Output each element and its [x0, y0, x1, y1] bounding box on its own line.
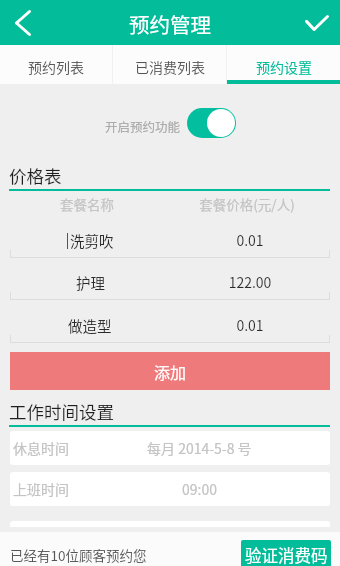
staticText: 09:00 [182, 479, 217, 499]
button[interactable]: 添加 [10, 352, 330, 390]
staticText: 套餐价格(元/人) [167, 194, 327, 214]
button[interactable]: 已消费列表 [113, 45, 226, 84]
staticText: 预约设置 [256, 57, 312, 77]
staticText: 添加 [154, 360, 187, 383]
staticText: 洗剪吹 [70, 230, 114, 251]
staticText: 预约列表 [28, 57, 84, 77]
staticText: 护理 [76, 272, 105, 293]
staticText: 每月 2014-5-8 号 [147, 438, 252, 458]
button[interactable]: 洗剪吹 [10, 222, 330, 258]
button[interactable]: 预约列表 [0, 45, 112, 84]
staticText: 验证消费码 [245, 543, 328, 566]
staticText: 套餐名称 [7, 194, 167, 214]
button[interactable] [187, 108, 236, 138]
staticText: 做造型 [68, 315, 112, 336]
button[interactable]: 验证消费码 [241, 540, 331, 566]
staticText: 工作时间设置 [9, 399, 114, 424]
staticText: 预约管理 [129, 9, 211, 39]
staticText: 开启预约功能 [105, 117, 181, 135]
staticText: 已经有10位顾客预约您 [10, 545, 147, 565]
button[interactable]: 预约设置 [227, 45, 340, 84]
staticText: 122.00 [170, 272, 330, 292]
button[interactable]: Confirm [294, 0, 340, 45]
staticText: 上班时间 [13, 479, 69, 499]
button[interactable]: 做造型 [10, 307, 330, 343]
staticText: 0.01 [170, 230, 330, 250]
button[interactable]: 上班时间 [10, 472, 330, 506]
staticText: 休息时间 [13, 438, 69, 458]
staticText: 已消费列表 [135, 57, 205, 77]
button[interactable]: 休息时间 [10, 431, 330, 465]
staticText: 0.01 [170, 315, 330, 335]
button[interactable]: 护理 [10, 264, 330, 300]
button[interactable]: Back [0, 0, 46, 45]
staticText: 价格表 [9, 163, 62, 188]
